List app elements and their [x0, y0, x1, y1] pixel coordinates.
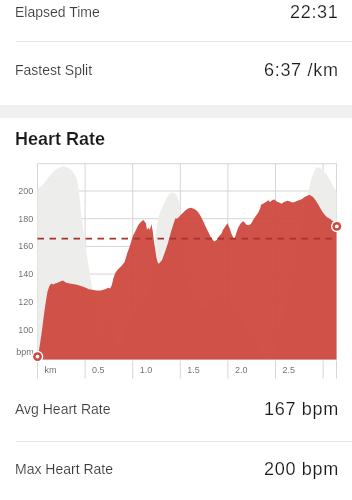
staticText: 167 bpm: [264, 399, 339, 419]
staticText: Heart Rate: [15, 129, 106, 149]
button[interactable]: Avg Heart Rate: [0, 378, 352, 439]
staticText: Fastest Split: [15, 62, 93, 78]
button[interactable]: Max Heart Rate: [0, 439, 352, 498]
staticText: Elapsed Time: [15, 4, 100, 20]
staticText: Avg Heart Rate: [15, 401, 111, 417]
staticText: 6:37 /km: [264, 60, 339, 80]
button[interactable]: Fastest Split: [0, 41, 352, 99]
staticText: 22:31: [290, 2, 339, 22]
staticText: Max Heart Rate: [15, 461, 114, 477]
staticText: 200 bpm: [264, 459, 339, 479]
button[interactable]: Elapsed Time: [0, 0, 352, 41]
